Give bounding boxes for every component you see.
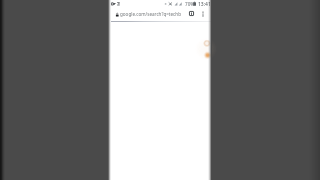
button[interactable]: Search or type web address [109, 8, 184, 20]
staticText: 70% [185, 1, 195, 7]
button[interactable]: More options [198, 9, 207, 18]
staticText: google.com/search?q=techb [120, 11, 181, 17]
button[interactable]: Switch or close tabs [187, 9, 196, 18]
staticText: 13:41 [198, 1, 211, 8]
